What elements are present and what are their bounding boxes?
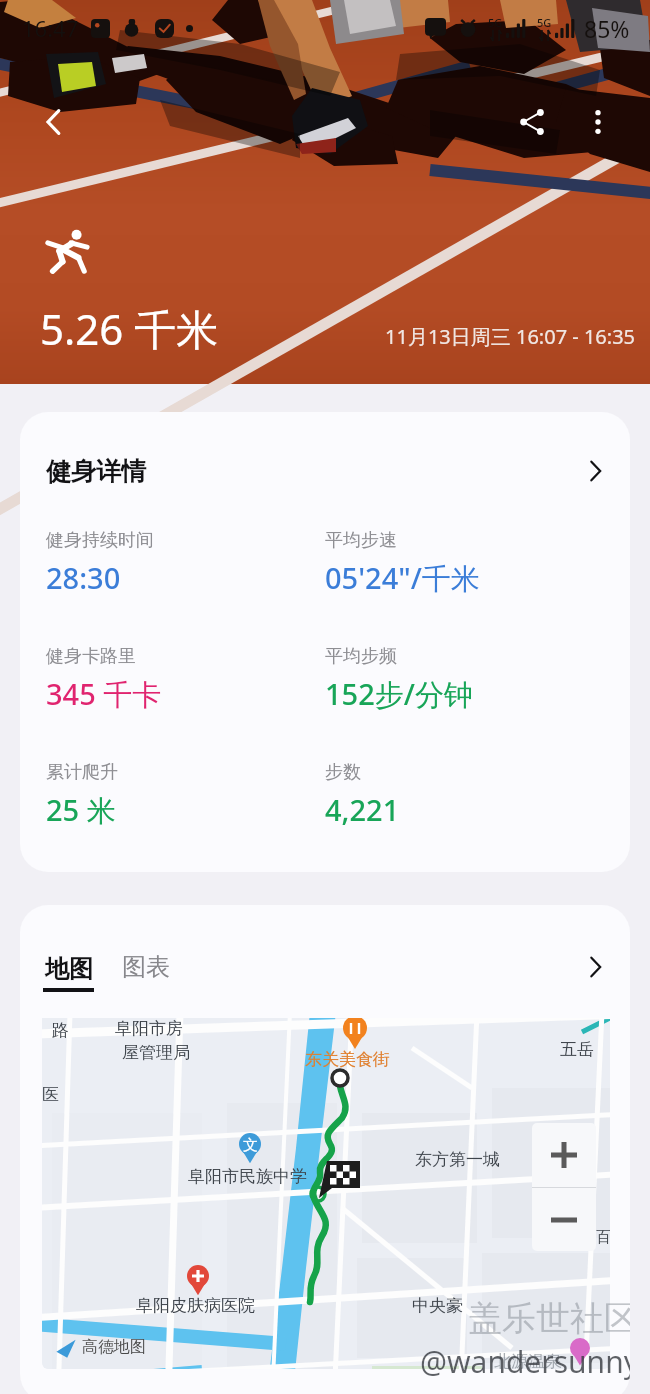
- staticText: 5G: [488, 15, 503, 30]
- staticText: 北源温泉: [494, 1351, 562, 1369]
- button[interactable]: 图表: [122, 952, 170, 993]
- staticText: 阜阳市民族中学: [188, 1166, 307, 1187]
- staticText: 阜阳皮肤病医院: [136, 1295, 255, 1316]
- staticText: 11月13日周三 16:07 - 16:35: [385, 323, 636, 350]
- staticText: 东关美食街: [305, 1049, 390, 1070]
- staticText: 345 千卡: [46, 674, 162, 714]
- staticText: 健身详情: [46, 456, 146, 487]
- button[interactable]: More options: [572, 96, 624, 148]
- button[interactable]: 地图: [43, 954, 94, 992]
- staticText: 健身持续时间: [46, 529, 154, 552]
- staticText: 28:30: [46, 558, 121, 597]
- staticText: 4,221: [325, 790, 400, 829]
- staticText: 东方第一城: [415, 1149, 500, 1170]
- button[interactable]: Back: [28, 96, 80, 148]
- staticText: 25 米: [46, 790, 116, 830]
- staticText: 05'24"/千米: [325, 558, 480, 598]
- staticText: 高德地图: [82, 1337, 146, 1357]
- staticText: 百: [596, 1228, 610, 1247]
- staticText: 盖乐世社区: [468, 1297, 630, 1340]
- button[interactable]: Zoom in: [532, 1123, 596, 1187]
- button[interactable]: Share: [506, 96, 558, 148]
- staticText: 152步/分钟: [325, 674, 473, 714]
- staticText: 累计爬升: [46, 761, 118, 784]
- staticText: 图表: [122, 952, 170, 982]
- staticText: @wandersunny: [420, 1341, 630, 1382]
- staticText: 85%: [584, 13, 630, 44]
- staticText: 16:47: [22, 13, 79, 43]
- staticText: 平均步频: [325, 645, 397, 668]
- staticText: 平均步速: [325, 529, 397, 552]
- staticText: 步数: [325, 761, 361, 784]
- staticText: 地图: [45, 954, 93, 984]
- staticText: 中央豪: [412, 1295, 463, 1316]
- button[interactable]: Open map: [582, 954, 608, 980]
- staticText: 路: [52, 1020, 69, 1041]
- staticText: 文: [243, 1136, 258, 1155]
- staticText: 5G: [537, 15, 552, 30]
- staticText: 屋管理局: [122, 1042, 190, 1063]
- staticText: 阜阳市房: [115, 1018, 183, 1039]
- button[interactable]: 健身详情: [20, 412, 630, 530]
- staticText: 5.26 千米: [40, 300, 219, 357]
- button[interactable]: Zoom out: [532, 1188, 595, 1251]
- staticText: 健身卡路里: [46, 645, 136, 668]
- staticText: 医: [42, 1084, 59, 1105]
- staticText: 五岳: [560, 1039, 594, 1060]
